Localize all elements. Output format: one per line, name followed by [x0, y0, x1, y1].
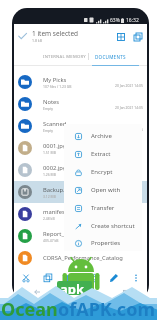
staticText: manifest.xml: [43, 208, 79, 216]
staticText: INTERNAL MEMORY: [43, 54, 86, 60]
button[interactable]: Properties: [64, 235, 142, 251]
button[interactable]: Open with: [64, 181, 142, 199]
staticText: Empty: [43, 128, 54, 133]
staticText: Transfer: [91, 204, 115, 212]
staticText: Empty: [43, 106, 54, 111]
button[interactable]: CORSA_Performance_Catalog: [14, 247, 147, 269]
button[interactable]: Transfer: [64, 199, 142, 217]
button[interactable]: Report_07...: [14, 225, 147, 247]
button[interactable]: My Picks: [14, 71, 147, 93]
staticText: ofAPK.com: [58, 297, 155, 320]
staticText: 1 item selected: [32, 29, 79, 38]
staticText: 405.47 kB: [43, 238, 59, 243]
button[interactable]: Copy: [37, 269, 59, 286]
staticText: 0001.jpg: [43, 142, 67, 150]
staticText: 0002.jpg: [43, 164, 67, 172]
staticText: Open with: [91, 186, 121, 194]
button[interactable]: Cut: [14, 269, 37, 286]
staticText: 16:32: [126, 17, 139, 24]
staticText: 63%: [110, 17, 120, 24]
staticText: DOCUMENTS: [95, 54, 126, 60]
button[interactable]: Selection mode: [112, 28, 129, 45]
button[interactable]: Archive: [64, 127, 142, 145]
staticText: 1.51 MB: [43, 150, 56, 155]
button[interactable]: Scanned: [14, 115, 147, 137]
button[interactable]: Home: [59, 286, 103, 298]
staticText: 1.8 kB: [32, 38, 42, 43]
button[interactable]: Create shortcut: [64, 217, 142, 235]
staticText: 1.26 MB: [43, 172, 56, 177]
button[interactable]: Notes: [14, 93, 147, 115]
staticText: Encrypt: [91, 168, 113, 176]
button[interactable]: Copy: [129, 28, 146, 45]
button[interactable]: Share: [81, 269, 103, 286]
button[interactable]: manifest.xml: [14, 203, 147, 225]
button[interactable]: Recents: [103, 286, 147, 298]
staticText: Backup.zip: [43, 186, 73, 194]
staticText: Extract: [91, 150, 111, 158]
button[interactable]: Backup.zip: [14, 181, 147, 203]
staticText: apk: [60, 281, 85, 294]
button[interactable]: Encrypt: [64, 163, 142, 181]
staticText: 3.12 MB: [43, 194, 56, 199]
button[interactable]: DOCUMENTS: [95, 48, 126, 66]
button[interactable]: Clear selection: [14, 28, 31, 45]
staticText: Properties: [91, 239, 121, 247]
button[interactable]: 0001.jpg: [14, 137, 147, 159]
button[interactable]: 0002.jpg: [14, 159, 147, 181]
staticText: Create shortcut: [91, 222, 135, 230]
staticText: Archive: [91, 132, 112, 140]
staticText: Report_07...: [43, 230, 76, 238]
staticText: 20 Jan 2021 14:05: [115, 105, 143, 110]
button[interactable]: INTERNAL MEMORY: [43, 48, 86, 66]
button[interactable]: Rename: [103, 269, 125, 286]
staticText: My Picks: [43, 76, 67, 84]
staticText: 20 Jan 2021 14:05: [115, 127, 143, 132]
staticText: Scanned: [43, 120, 67, 128]
staticText: 20 Jan 2021 14:05: [115, 83, 143, 88]
staticText: 2.48 kB: [43, 216, 55, 221]
button[interactable]: Extract: [64, 145, 142, 163]
staticText: 107 files / 1.23 GB: [43, 84, 72, 89]
staticText: Ocean: [1, 297, 58, 320]
staticText: CORSA_Performance_Catalog: [43, 254, 123, 262]
button[interactable]: Back: [14, 286, 59, 298]
button[interactable]: Delete: [59, 269, 81, 286]
staticText: Notes: [43, 98, 60, 106]
button[interactable]: More: [125, 269, 147, 286]
